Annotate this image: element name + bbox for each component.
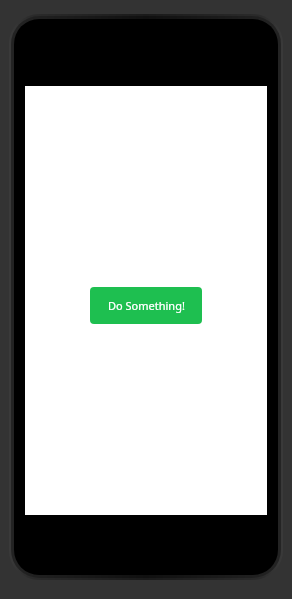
staticText: Do Something! — [108, 298, 185, 313]
button[interactable]: Do Something! — [90, 287, 202, 324]
